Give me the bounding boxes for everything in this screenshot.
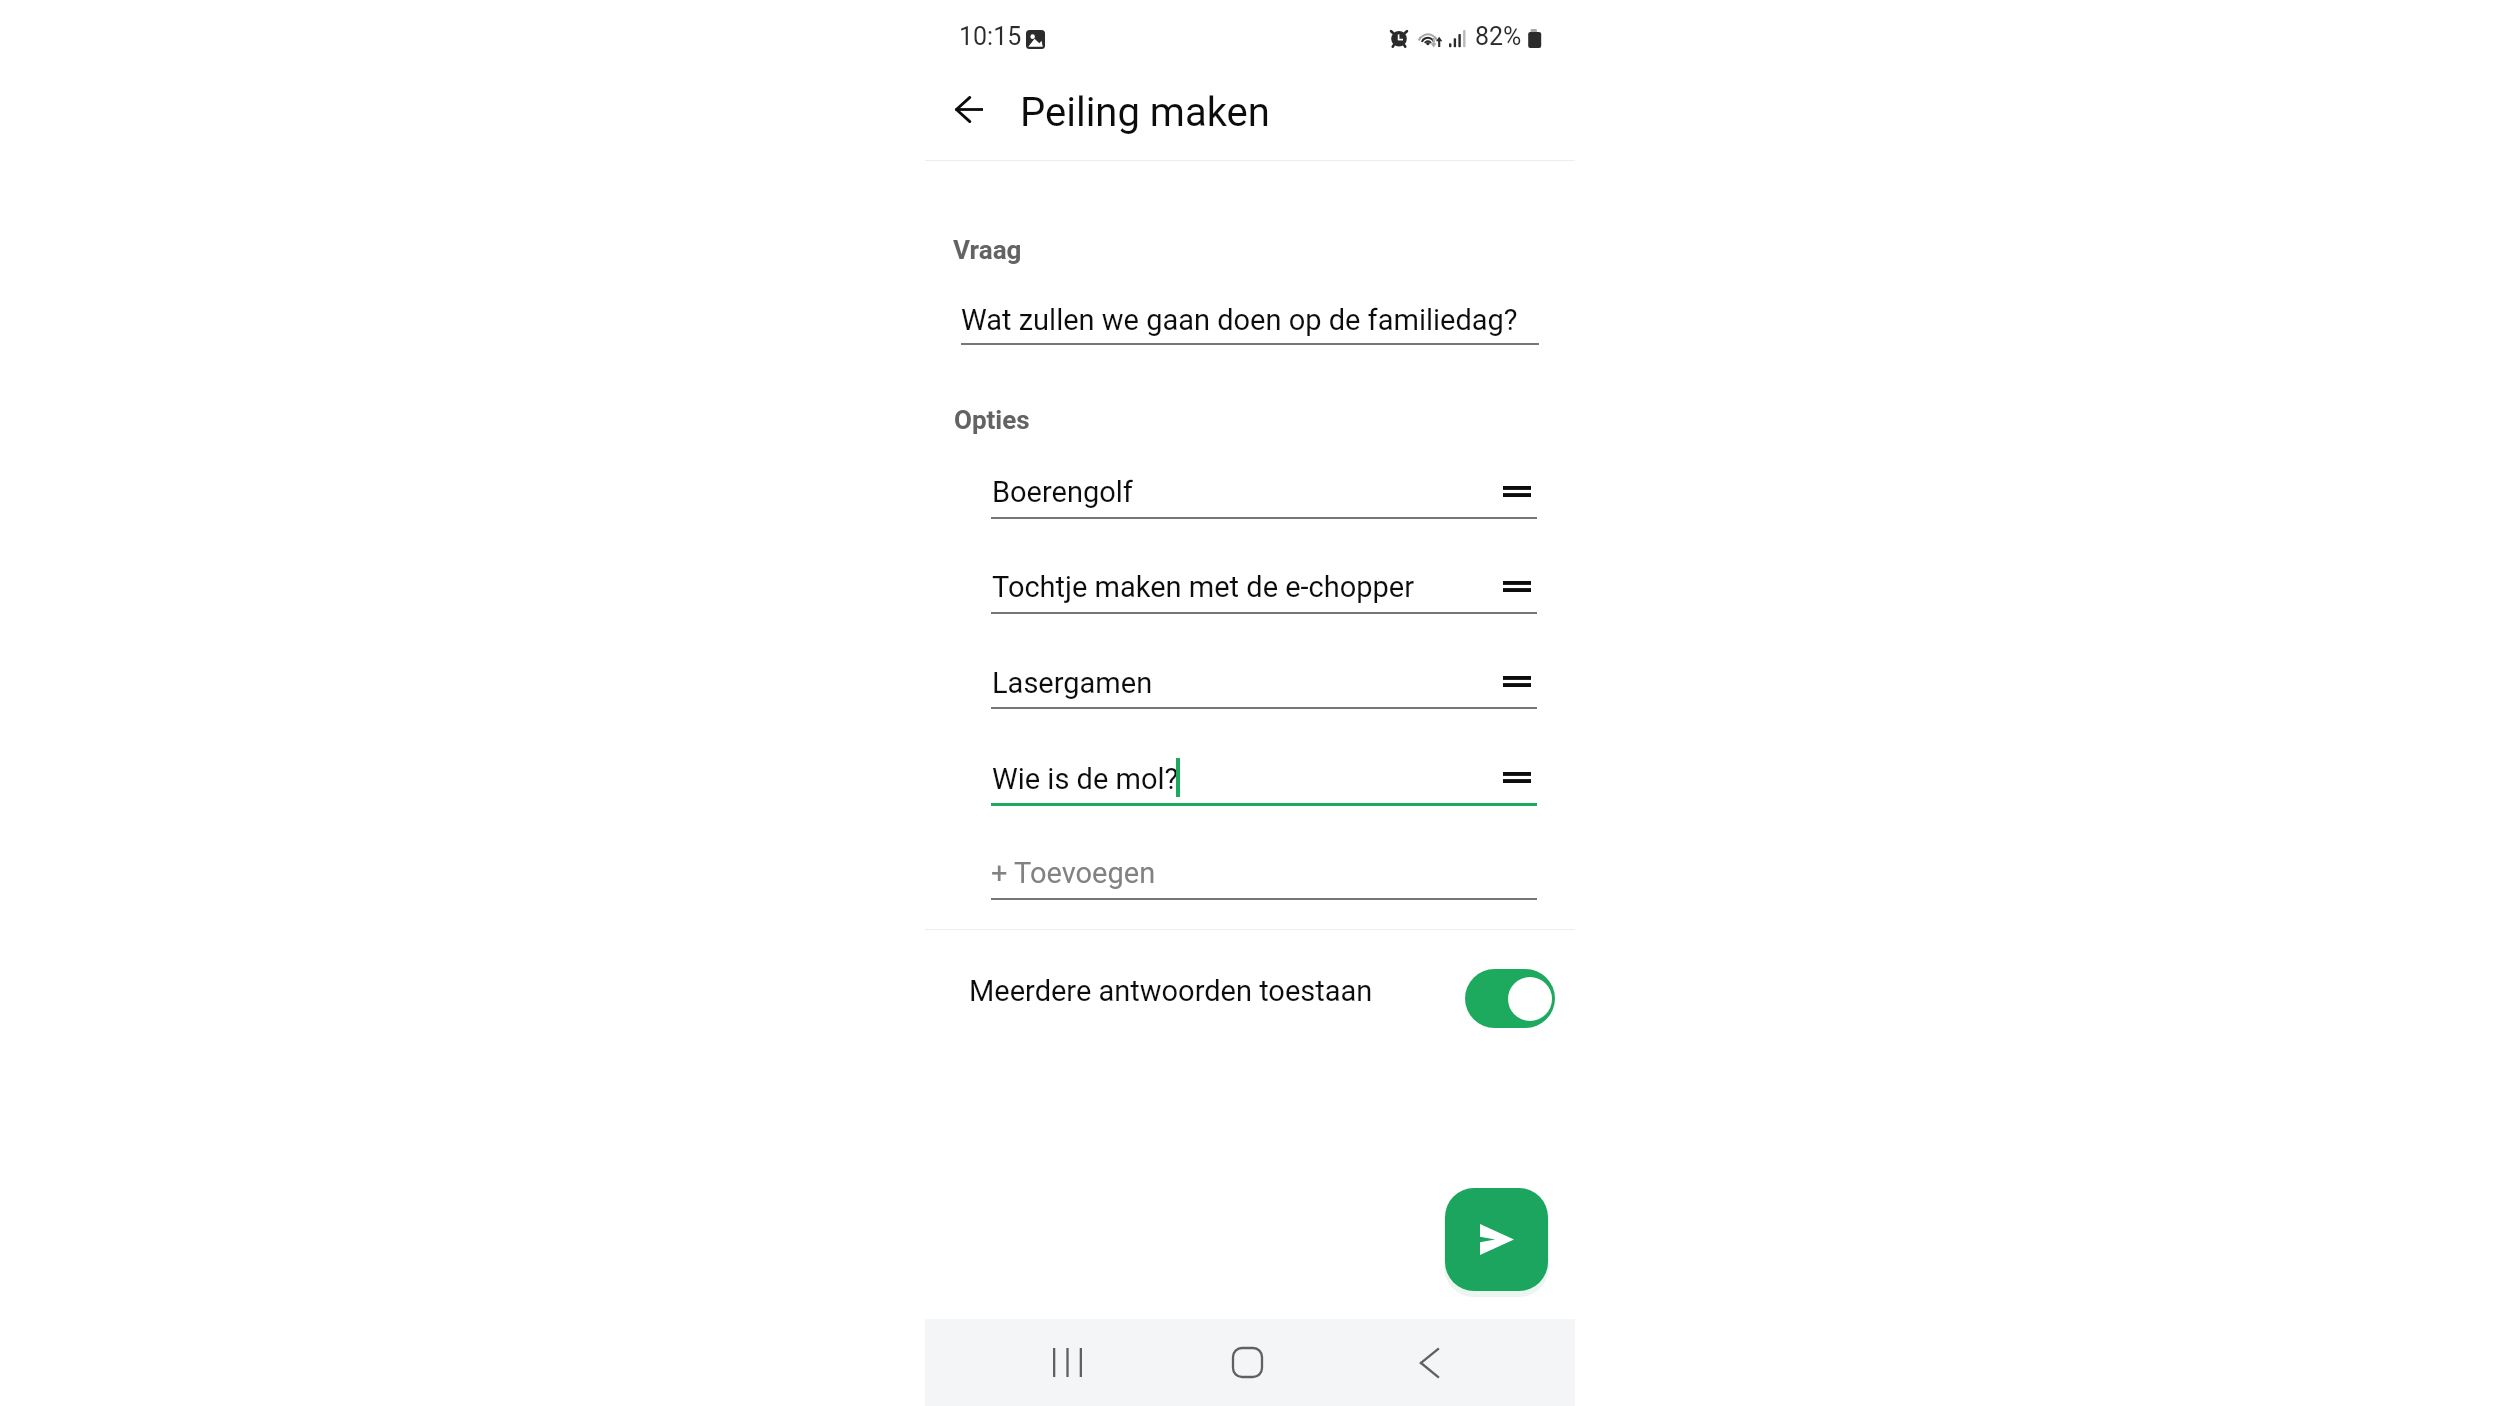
- button[interactable]: + Toevoegen: [991, 856, 1156, 890]
- staticText: Peiling maken: [1020, 89, 1270, 136]
- staticText: Boerengolf: [992, 475, 1133, 509]
- button[interactable]: Verslepen: [1480, 658, 1554, 704]
- staticText: + Toevoegen: [991, 856, 1156, 890]
- button[interactable]: Verslepen: [1480, 468, 1554, 514]
- button[interactable]: Versturen: [1445, 1188, 1548, 1291]
- button[interactable]: Verslepen: [1480, 563, 1554, 609]
- staticText: Wat zullen we gaan doen op de familiedag…: [961, 303, 1518, 337]
- staticText: 82%: [1475, 22, 1522, 51]
- staticText: Tochtje maken met de e-chopper: [992, 570, 1415, 604]
- staticText: Wie is de mol?: [992, 762, 1179, 796]
- button[interactable]: Recente apps: [1022, 1319, 1112, 1406]
- button[interactable]: Terug: [940, 80, 998, 138]
- button[interactable]: [1465, 969, 1555, 1028]
- button[interactable]: Meerdere antwoorden toestaan: [969, 974, 1373, 1008]
- staticText: Meerdere antwoorden toestaan: [969, 974, 1373, 1008]
- staticText: 10:15: [959, 22, 1022, 51]
- staticText: Vraag: [953, 235, 1022, 265]
- staticText: Opties: [954, 405, 1030, 435]
- button[interactable]: Terug: [1384, 1319, 1474, 1406]
- button[interactable]: Verslepen: [1480, 754, 1554, 800]
- button[interactable]: Home: [1202, 1319, 1292, 1406]
- staticText: Lasergamen: [992, 666, 1153, 700]
